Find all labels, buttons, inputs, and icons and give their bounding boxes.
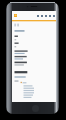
button[interactable]: Home bbox=[32, 105, 39, 112]
button[interactable]: Home bbox=[14, 14, 17, 17]
